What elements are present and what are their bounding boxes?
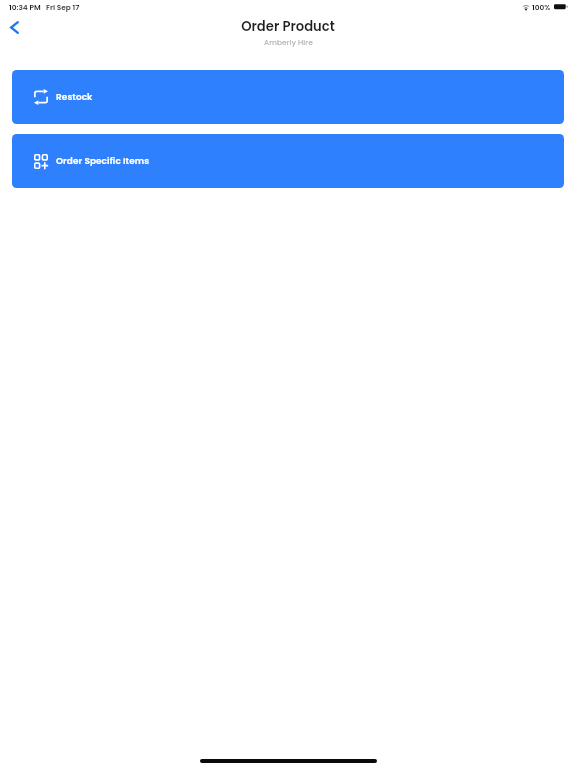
staticText: Order Specific Items [56, 155, 150, 167]
button[interactable]: Back [1, 13, 27, 39]
staticText: Fri Sep 17 [46, 2, 80, 12]
button[interactable]: Restock [12, 70, 564, 124]
staticText: 10:34 PM [9, 2, 41, 12]
staticText: Restock [56, 91, 93, 103]
button[interactable]: Order Specific Items [12, 134, 564, 188]
staticText: Amberly Hire [264, 37, 313, 47]
staticText: Order Product [241, 17, 335, 35]
staticText: 100% [532, 2, 551, 12]
